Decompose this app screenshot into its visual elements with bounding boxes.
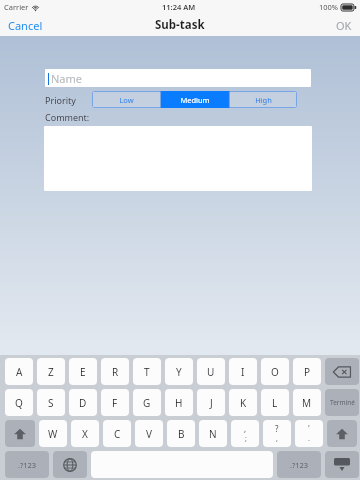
button[interactable]: E [69, 358, 97, 385]
staticText: H [175, 396, 183, 410]
staticText: M [302, 396, 312, 410]
staticText: .?123 [18, 460, 37, 470]
staticText: Comment: [45, 111, 90, 123]
button[interactable]: A [5, 358, 33, 385]
button[interactable]: Q [5, 389, 33, 416]
button[interactable]: Backspace [325, 358, 359, 385]
button[interactable]: D [69, 389, 97, 416]
staticText: Name [51, 71, 83, 86]
staticText: OK [336, 18, 352, 33]
button[interactable]: Z [37, 358, 65, 385]
staticText: I [241, 365, 245, 379]
button[interactable]: L [261, 389, 289, 416]
button[interactable]: Comma semicolon [231, 420, 259, 447]
staticText: Sub-task [155, 17, 205, 33]
staticText: E [80, 365, 86, 379]
staticText: W [48, 427, 58, 441]
button[interactable]: Name [45, 69, 311, 87]
button[interactable]: J [197, 389, 225, 416]
staticText: O [271, 365, 279, 379]
staticText: N [209, 427, 217, 441]
staticText: Z [48, 365, 54, 379]
button[interactable]: High [229, 91, 297, 108]
button[interactable]: Question comma [263, 420, 291, 447]
button[interactable]: P [293, 358, 321, 385]
button[interactable]: Hide keyboard [325, 451, 359, 478]
staticText: F [112, 396, 118, 410]
staticText: .?123 [290, 460, 309, 470]
button[interactable]: OK [328, 15, 360, 36]
button[interactable]: H [165, 389, 193, 416]
button[interactable]: Apostrophe period [295, 420, 323, 447]
button[interactable]: C [103, 420, 131, 447]
button[interactable]: X [71, 420, 99, 447]
staticText: 100% [319, 2, 339, 12]
staticText: S [48, 396, 54, 410]
staticText: X [82, 427, 88, 441]
staticText: V [146, 427, 152, 441]
button[interactable]: I [229, 358, 257, 385]
staticText: G [143, 396, 151, 410]
staticText: 11:24 AM [162, 2, 196, 12]
button[interactable]: Switch language [53, 451, 87, 478]
button[interactable]: Cancel [0, 15, 51, 36]
button[interactable]: N [199, 420, 227, 447]
staticText: P [304, 365, 311, 379]
staticText: J [210, 396, 213, 410]
staticText: T [144, 365, 150, 379]
button[interactable]: M [293, 389, 321, 416]
button[interactable]: R [101, 358, 129, 385]
staticText: High [255, 95, 272, 105]
button[interactable]: Shift [5, 420, 35, 447]
button[interactable]: T [133, 358, 161, 385]
staticText: A [16, 365, 23, 379]
staticText: ? [275, 423, 279, 434]
staticText: Priority [45, 94, 76, 106]
staticText: Y [176, 365, 182, 379]
staticText: Carrier [4, 2, 29, 12]
button[interactable]: Terminé [325, 389, 359, 416]
button[interactable]: Shift [327, 420, 357, 447]
button[interactable]: S [37, 389, 65, 416]
staticText: K [240, 396, 247, 410]
staticText: . [308, 434, 310, 444]
button[interactable]: V [135, 420, 163, 447]
button[interactable]: K [229, 389, 257, 416]
staticText: D [79, 396, 87, 410]
staticText: L [272, 396, 278, 410]
staticText: Medium [180, 95, 210, 105]
button[interactable]: W [39, 420, 67, 447]
staticText: Terminé [330, 398, 355, 407]
button[interactable]: G [133, 389, 161, 416]
button[interactable]: U [197, 358, 225, 385]
staticText: ' [308, 423, 310, 434]
button[interactable]: .?123 [277, 451, 321, 478]
staticText: R [112, 365, 119, 379]
staticText: Low [119, 95, 134, 105]
staticText: U [207, 365, 215, 379]
button[interactable]: Low [92, 91, 161, 108]
staticText: Cancel [8, 18, 43, 33]
staticText: Q [15, 396, 23, 410]
button[interactable]: Medium [161, 91, 229, 108]
staticText: C [114, 427, 121, 441]
staticText: B [178, 427, 185, 441]
button[interactable]: Y [165, 358, 193, 385]
staticText: , [244, 423, 247, 434]
staticText: , [276, 434, 278, 444]
staticText: ; [245, 434, 247, 444]
button[interactable]: F [101, 389, 129, 416]
button[interactable]: O [261, 358, 289, 385]
button[interactable]: .?123 [5, 451, 49, 478]
button[interactable]: B [167, 420, 195, 447]
